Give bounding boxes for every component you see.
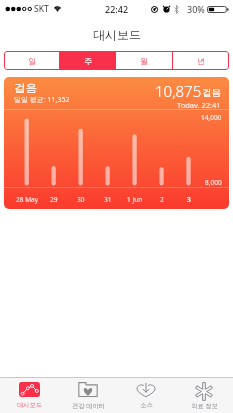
staticText: 대시보드 xyxy=(93,27,141,42)
staticText: 2 xyxy=(160,195,164,204)
button[interactable]: 년 xyxy=(173,51,229,70)
staticText: 걸음 xyxy=(14,81,37,95)
staticText: 일일 평균: 11,352 xyxy=(14,95,70,105)
staticText: 31 xyxy=(104,195,112,204)
staticText: 걸음 xyxy=(202,87,221,99)
button[interactable]: 대시보드 xyxy=(0,378,59,413)
button[interactable]: 걸음 xyxy=(4,77,229,209)
staticText: 10,875 xyxy=(155,81,202,101)
staticText: 30 xyxy=(77,195,85,204)
button[interactable]: 의료 정보 xyxy=(175,378,233,413)
staticText: 소스 xyxy=(140,401,153,409)
button[interactable]: 주 xyxy=(60,51,115,70)
staticText: 22:42 xyxy=(105,3,129,15)
button[interactable]: 일 xyxy=(4,51,59,70)
staticText: 년 xyxy=(197,56,205,66)
staticText: 대시보드 xyxy=(17,401,42,409)
staticText: 8,000 xyxy=(205,178,222,187)
button[interactable]: 건강 데이터 xyxy=(59,378,117,413)
staticText: SKT xyxy=(34,3,49,15)
staticText: 건강 데이터 xyxy=(72,401,105,409)
staticText: 일 xyxy=(28,56,36,66)
button[interactable]: 월 xyxy=(116,51,172,70)
staticText: 29 xyxy=(50,195,58,204)
staticText: 30% xyxy=(187,3,205,15)
staticText: 28 May xyxy=(16,195,38,204)
staticText: 주 xyxy=(84,56,92,66)
button[interactable]: 소스 xyxy=(117,378,175,413)
staticText: 의료 정보 xyxy=(191,401,218,409)
staticText: 1 Jun xyxy=(127,195,143,204)
staticText: Today, 22:41 xyxy=(177,100,221,108)
staticText: 월 xyxy=(140,56,148,66)
staticText: 3 xyxy=(187,195,191,204)
staticText: 14,000 xyxy=(201,113,222,122)
